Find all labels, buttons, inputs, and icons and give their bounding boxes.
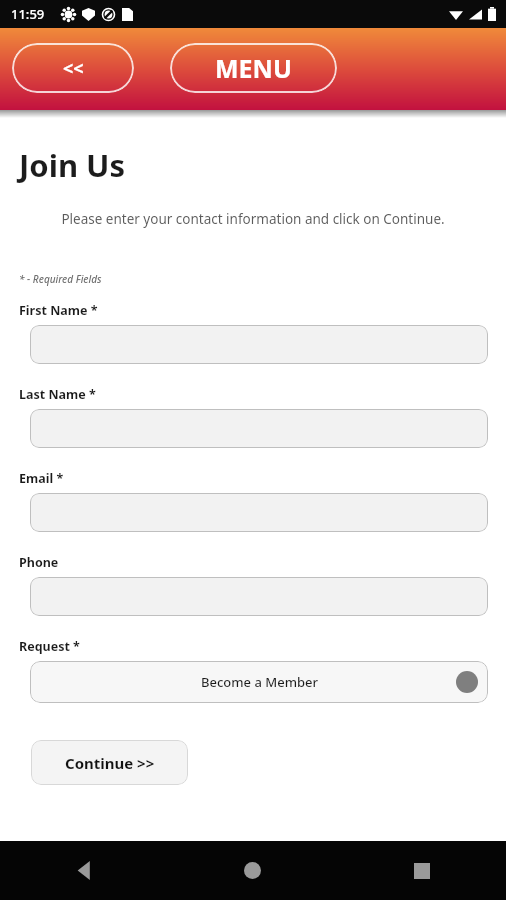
button[interactable]: Back [0,841,168,900]
button[interactable] [30,325,488,364]
staticText: First Name * [19,302,98,319]
button[interactable]: Continue >> [31,740,188,785]
button[interactable] [30,409,488,448]
button[interactable] [30,493,488,532]
staticText: << [63,56,84,81]
staticText: Phone [19,554,59,571]
button[interactable]: MENU [170,43,337,93]
button[interactable]: Back [12,43,134,93]
staticText: Continue >> [65,753,155,773]
staticText: * - Required Fields [19,272,102,286]
staticText: MENU [215,51,292,85]
staticText: Last Name * [19,386,96,403]
button[interactable] [30,577,488,616]
staticText: Please enter your contact information an… [20,210,486,228]
staticText: Email * [19,470,64,487]
button[interactable]: Become a Member [30,661,488,703]
staticText: Request * [19,638,80,655]
button[interactable]: Home [168,841,337,900]
staticText: Join Us [19,144,126,186]
button[interactable]: Recent apps [337,841,506,900]
staticText: 11:59 [11,5,45,23]
staticText: Become a Member [201,673,318,691]
